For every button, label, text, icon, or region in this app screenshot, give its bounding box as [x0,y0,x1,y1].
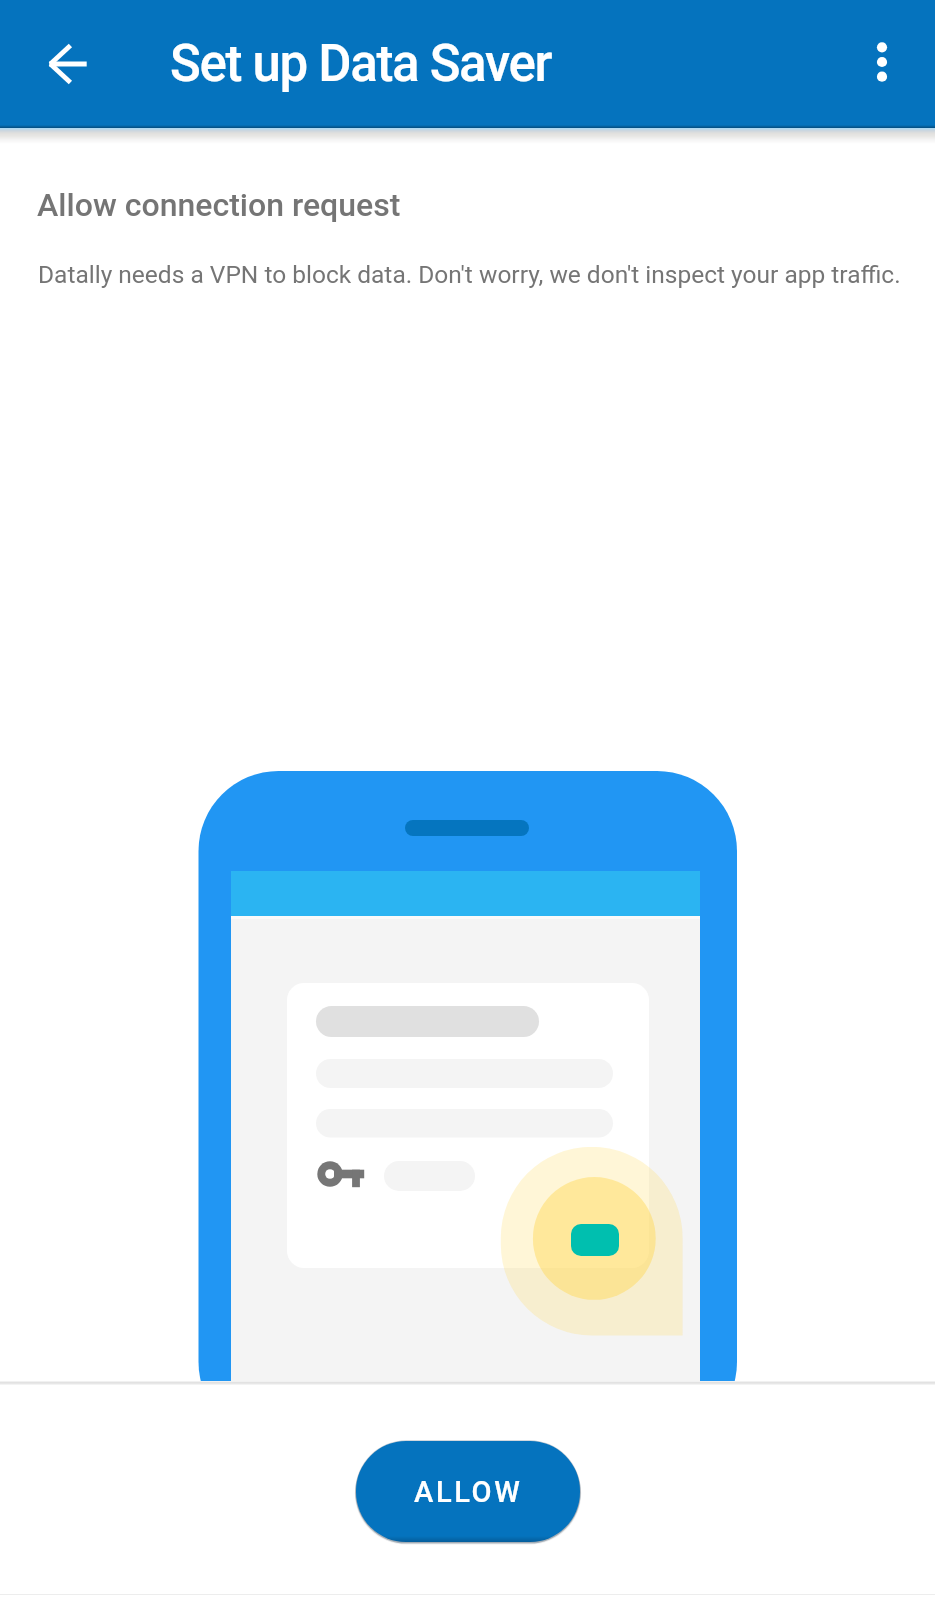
button[interactable]: More options [807,0,935,128]
button[interactable]: ALLOW [356,1441,580,1542]
staticText: Datally needs a VPN to block data. Don't… [38,260,901,289]
staticText: Allow connection request [37,186,401,224]
staticText: ALLOW [414,1475,523,1509]
button[interactable]: Back [0,0,128,128]
staticText: Set up Data Saver [170,34,552,94]
